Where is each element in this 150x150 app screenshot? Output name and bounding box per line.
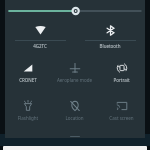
button[interactable]: Aeroplane mode <box>51 59 98 83</box>
staticText: Flashlight <box>7 115 49 121</box>
button[interactable]: CRONET <box>5 59 51 83</box>
staticText: Portrait <box>100 77 143 83</box>
staticText: 4G2TC <box>7 43 73 49</box>
button[interactable]: Brightness <box>5 0 145 21</box>
button[interactable]: 4G2TC <box>5 21 75 49</box>
button[interactable]: Bluetooth <box>75 21 145 49</box>
button[interactable]: Cast screen <box>98 97 145 121</box>
staticText: CRONET <box>7 77 49 83</box>
staticText: Location <box>53 115 96 121</box>
button[interactable]: Location <box>51 97 98 121</box>
staticText: Cast screen <box>100 115 143 121</box>
button[interactable]: Flashlight <box>5 97 51 121</box>
button[interactable]: Portrait <box>98 59 145 83</box>
staticText: Aeroplane mode <box>53 77 96 83</box>
staticText: Bluetooth <box>77 43 143 49</box>
